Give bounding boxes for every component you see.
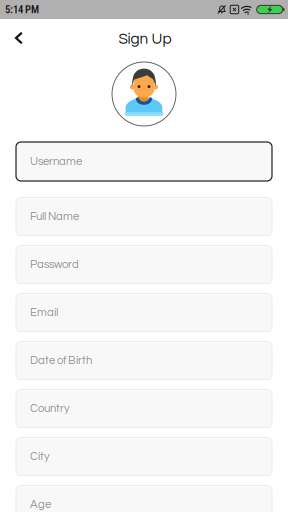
staticText: Country	[30, 403, 70, 414]
staticText: Age	[30, 499, 51, 510]
button[interactable]: Country	[16, 389, 272, 427]
button[interactable]: City	[16, 437, 272, 475]
staticText: Sign Up	[118, 31, 171, 47]
button[interactable]: Age	[16, 485, 272, 512]
staticText: Full Name	[30, 211, 79, 222]
button[interactable]: Email	[16, 293, 272, 331]
staticText: Password	[30, 259, 79, 270]
staticText: City	[30, 451, 50, 462]
staticText: Date of Birth	[30, 355, 92, 366]
staticText: Username	[30, 156, 82, 167]
button[interactable]: Full Name	[16, 197, 272, 235]
button[interactable]: Password	[16, 245, 272, 283]
staticText: 5:14 PM	[5, 3, 39, 16]
button[interactable]: Back	[3, 21, 35, 55]
button[interactable]: Username	[16, 142, 272, 181]
staticText: Email	[30, 307, 58, 318]
button[interactable]: Date of Birth	[16, 341, 272, 379]
